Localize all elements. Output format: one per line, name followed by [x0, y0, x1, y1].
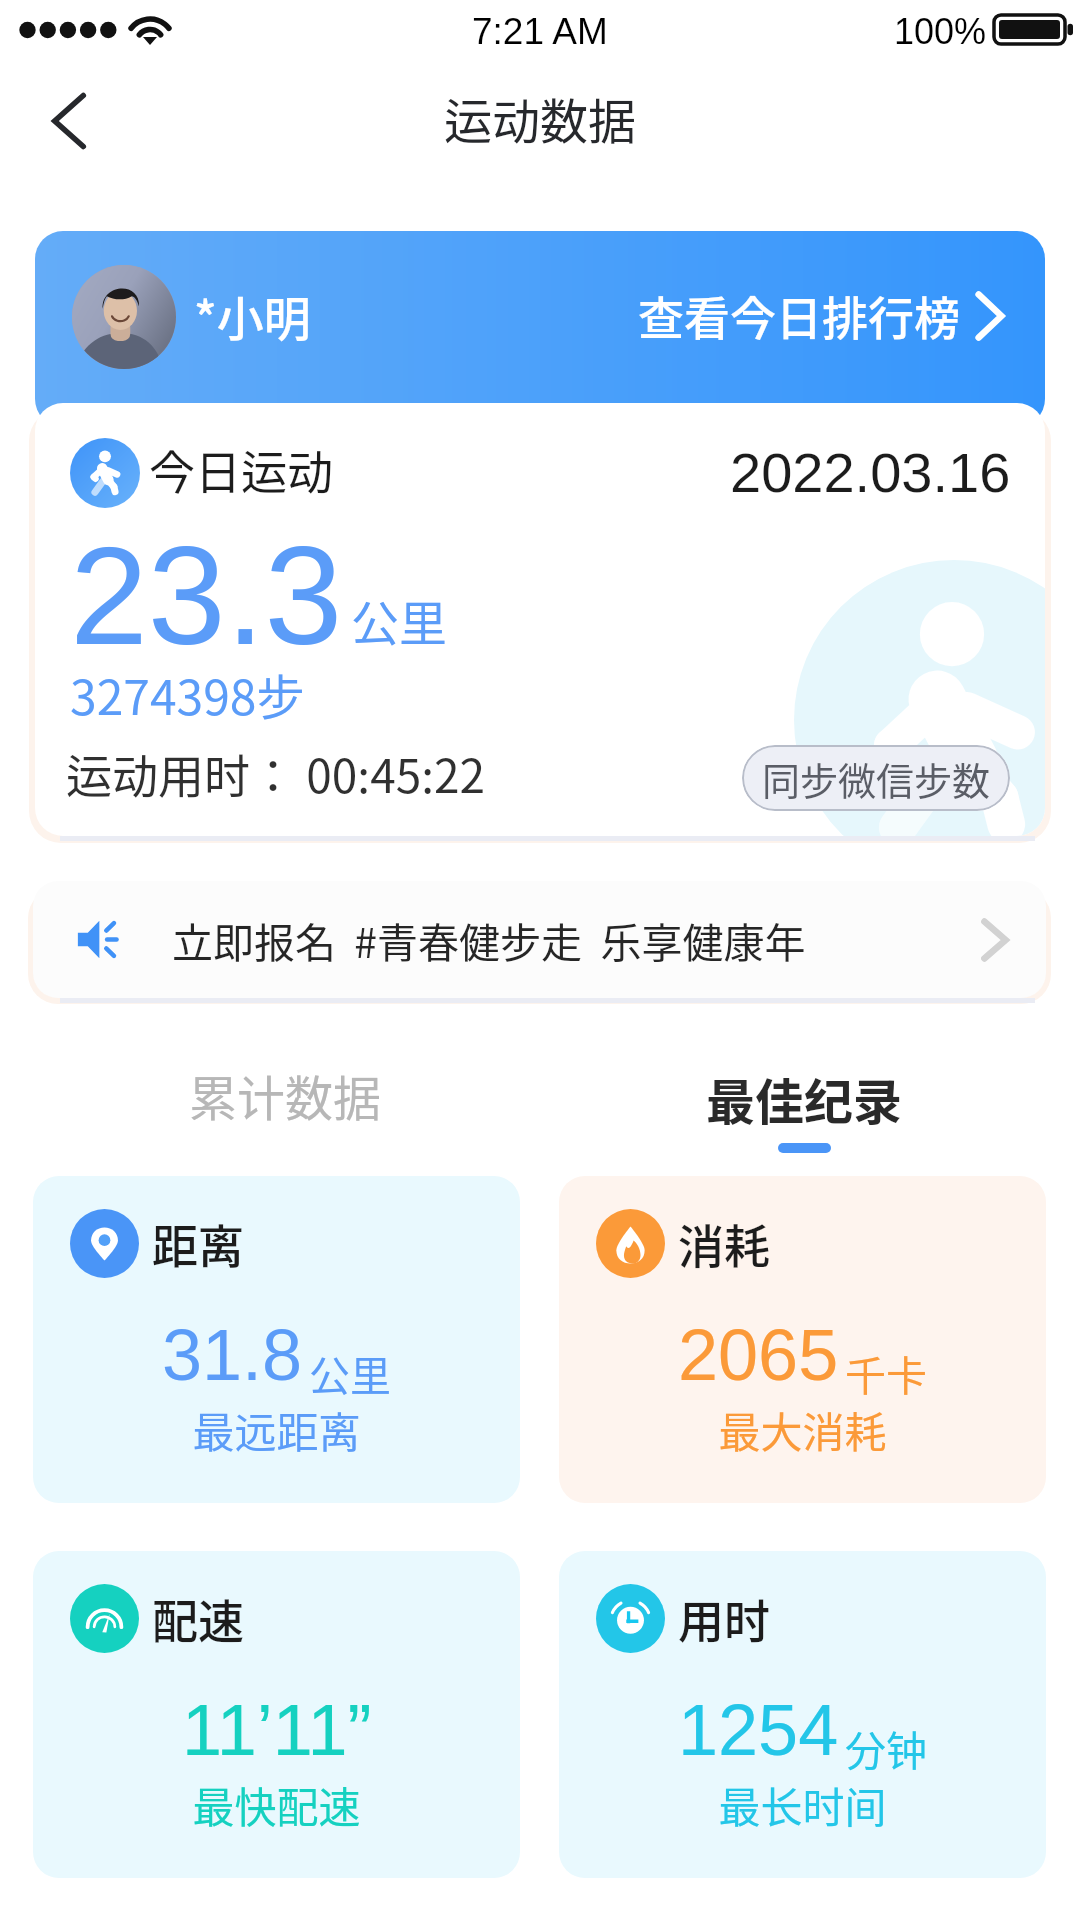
staticText: 距离: [152, 1210, 244, 1277]
staticText: 最远距离: [33, 1399, 520, 1460]
button[interactable]: Back: [14, 77, 124, 165]
staticText: 运动数据: [444, 83, 637, 153]
staticText: 2065: [678, 1315, 839, 1395]
button[interactable]: 立即报名 #青春健步走 乐享健康年: [33, 881, 1046, 998]
staticText: 23.3: [70, 517, 343, 673]
staticText: 2022.03.16: [730, 441, 1011, 504]
staticText: 配速: [152, 1585, 244, 1652]
staticText: 今日运动: [149, 436, 333, 503]
staticText: 立即报名 #青春健步走 乐享健康年: [172, 910, 806, 969]
staticText: 1254: [678, 1690, 839, 1770]
button[interactable]: 距离: [33, 1176, 520, 1503]
staticText: 3274398步: [70, 659, 305, 729]
button[interactable]: 同步微信步数: [742, 745, 1010, 811]
staticText: *小明: [194, 281, 311, 349]
staticText: 千卡: [845, 1343, 927, 1402]
staticText: 查看今日排行榜: [638, 282, 960, 349]
button[interactable]: 消耗: [559, 1176, 1046, 1503]
button[interactable]: 用时: [559, 1551, 1046, 1878]
staticText: 同步微信步数: [762, 751, 991, 806]
button[interactable]: 累计数据: [100, 1060, 470, 1160]
button[interactable]: 今日运动: [35, 403, 1045, 836]
staticText: 31.8: [162, 1315, 303, 1395]
staticText: 公里: [309, 1343, 391, 1402]
staticText: 公里: [351, 585, 448, 655]
staticText: 11’11”: [182, 1690, 372, 1770]
staticText: 最快配速: [33, 1774, 520, 1835]
staticText: 消耗: [678, 1210, 770, 1277]
staticText: 用时: [678, 1585, 770, 1652]
button[interactable]: 最佳纪录: [619, 1060, 989, 1160]
staticText: 最佳纪录: [706, 1063, 903, 1134]
staticText: 累计数据: [189, 1060, 382, 1130]
button[interactable]: 配速: [33, 1551, 520, 1878]
staticText: 分钟: [845, 1718, 927, 1777]
staticText: 最长时间: [559, 1774, 1046, 1835]
staticText: 运动用时： 00:45:22: [66, 740, 486, 807]
staticText: 7:21 AM: [472, 11, 608, 52]
staticText: 最大消耗: [559, 1399, 1046, 1460]
staticText: 100%: [894, 11, 987, 51]
button[interactable]: *小明: [35, 231, 1045, 427]
